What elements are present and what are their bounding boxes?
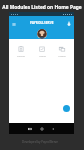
button[interactable]: Menu (12, 22, 16, 26)
button[interactable]: Back (51, 127, 55, 131)
button[interactable]: Claims (53, 46, 71, 57)
button[interactable]: Account (67, 21, 71, 25)
button[interactable]: Recents (28, 127, 32, 131)
staticText: Developed by PayrollServe (0, 140, 82, 144)
button[interactable]: Add (63, 105, 70, 112)
staticText: All Modules Listed on Home Page (0, 4, 84, 11)
button[interactable]: Home (40, 127, 44, 131)
button[interactable]: Profile photo (37, 29, 47, 39)
staticText: PAYROLLSERVE (30, 21, 54, 25)
staticText: Leave (39, 54, 46, 57)
button[interactable]: Payslip (12, 46, 30, 57)
staticText: Payslip (17, 54, 25, 57)
staticText: Claims (58, 54, 66, 57)
button[interactable]: Leave (33, 46, 51, 57)
